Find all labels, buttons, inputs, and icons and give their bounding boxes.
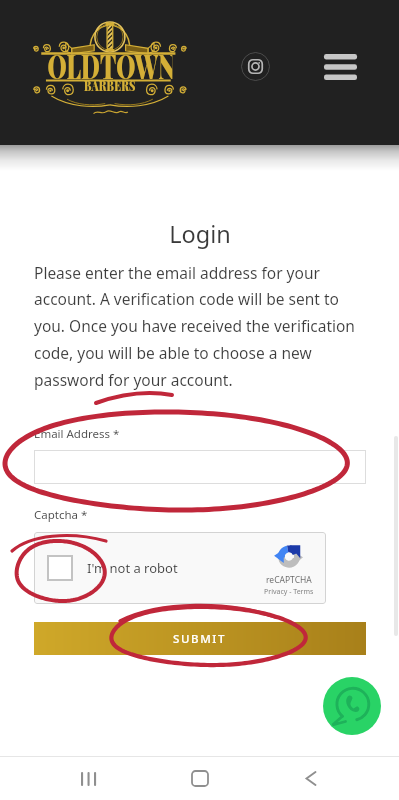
button[interactable]: SUBMIT: [34, 622, 366, 655]
staticText: Captcha *: [34, 507, 88, 523]
button[interactable]: Open menu: [324, 53, 357, 80]
button[interactable]: Home: [177, 757, 222, 800]
button[interactable]: Recent apps: [66, 757, 111, 800]
button[interactable]: Email Address field: [34, 450, 366, 484]
staticText: Privacy - Terms: [264, 587, 314, 597]
button[interactable]: Instagram: [241, 52, 270, 81]
button[interactable]: I'm not a robot checkbox: [47, 555, 73, 581]
button[interactable]: Chat on WhatsApp: [323, 677, 381, 735]
staticText: Please enter the email address for your …: [34, 262, 366, 391]
staticText: OLDTOWN: [48, 43, 172, 88]
staticText: I'm not a robot: [87, 559, 178, 577]
button[interactable]: Back: [288, 757, 333, 800]
staticText: reCAPTCHA: [266, 574, 312, 586]
staticText: BARBERS: [84, 74, 136, 95]
staticText: Email Address *: [34, 426, 120, 442]
staticText: SUBMIT: [173, 631, 227, 647]
staticText: Login: [34, 218, 366, 250]
